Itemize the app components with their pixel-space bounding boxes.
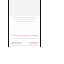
button[interactable]: Highlighted row: [9, 0, 40, 47]
button[interactable]: Highlighted row: [11, 34, 38, 36]
